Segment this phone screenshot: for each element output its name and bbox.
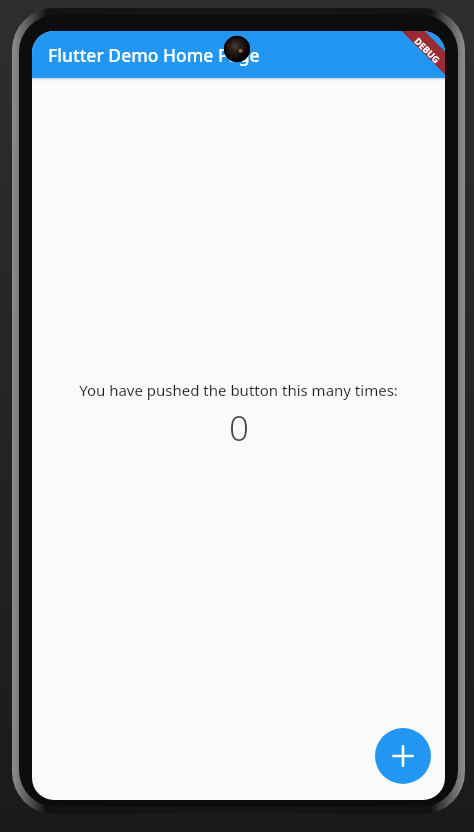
staticText: 0 bbox=[229, 404, 249, 452]
staticText: DEBUG bbox=[412, 35, 443, 65]
staticText: You have pushed the button this many tim… bbox=[79, 380, 398, 400]
staticText: Flutter Demo Home Page bbox=[48, 43, 260, 67]
button[interactable]: Increment counter bbox=[375, 728, 431, 784]
